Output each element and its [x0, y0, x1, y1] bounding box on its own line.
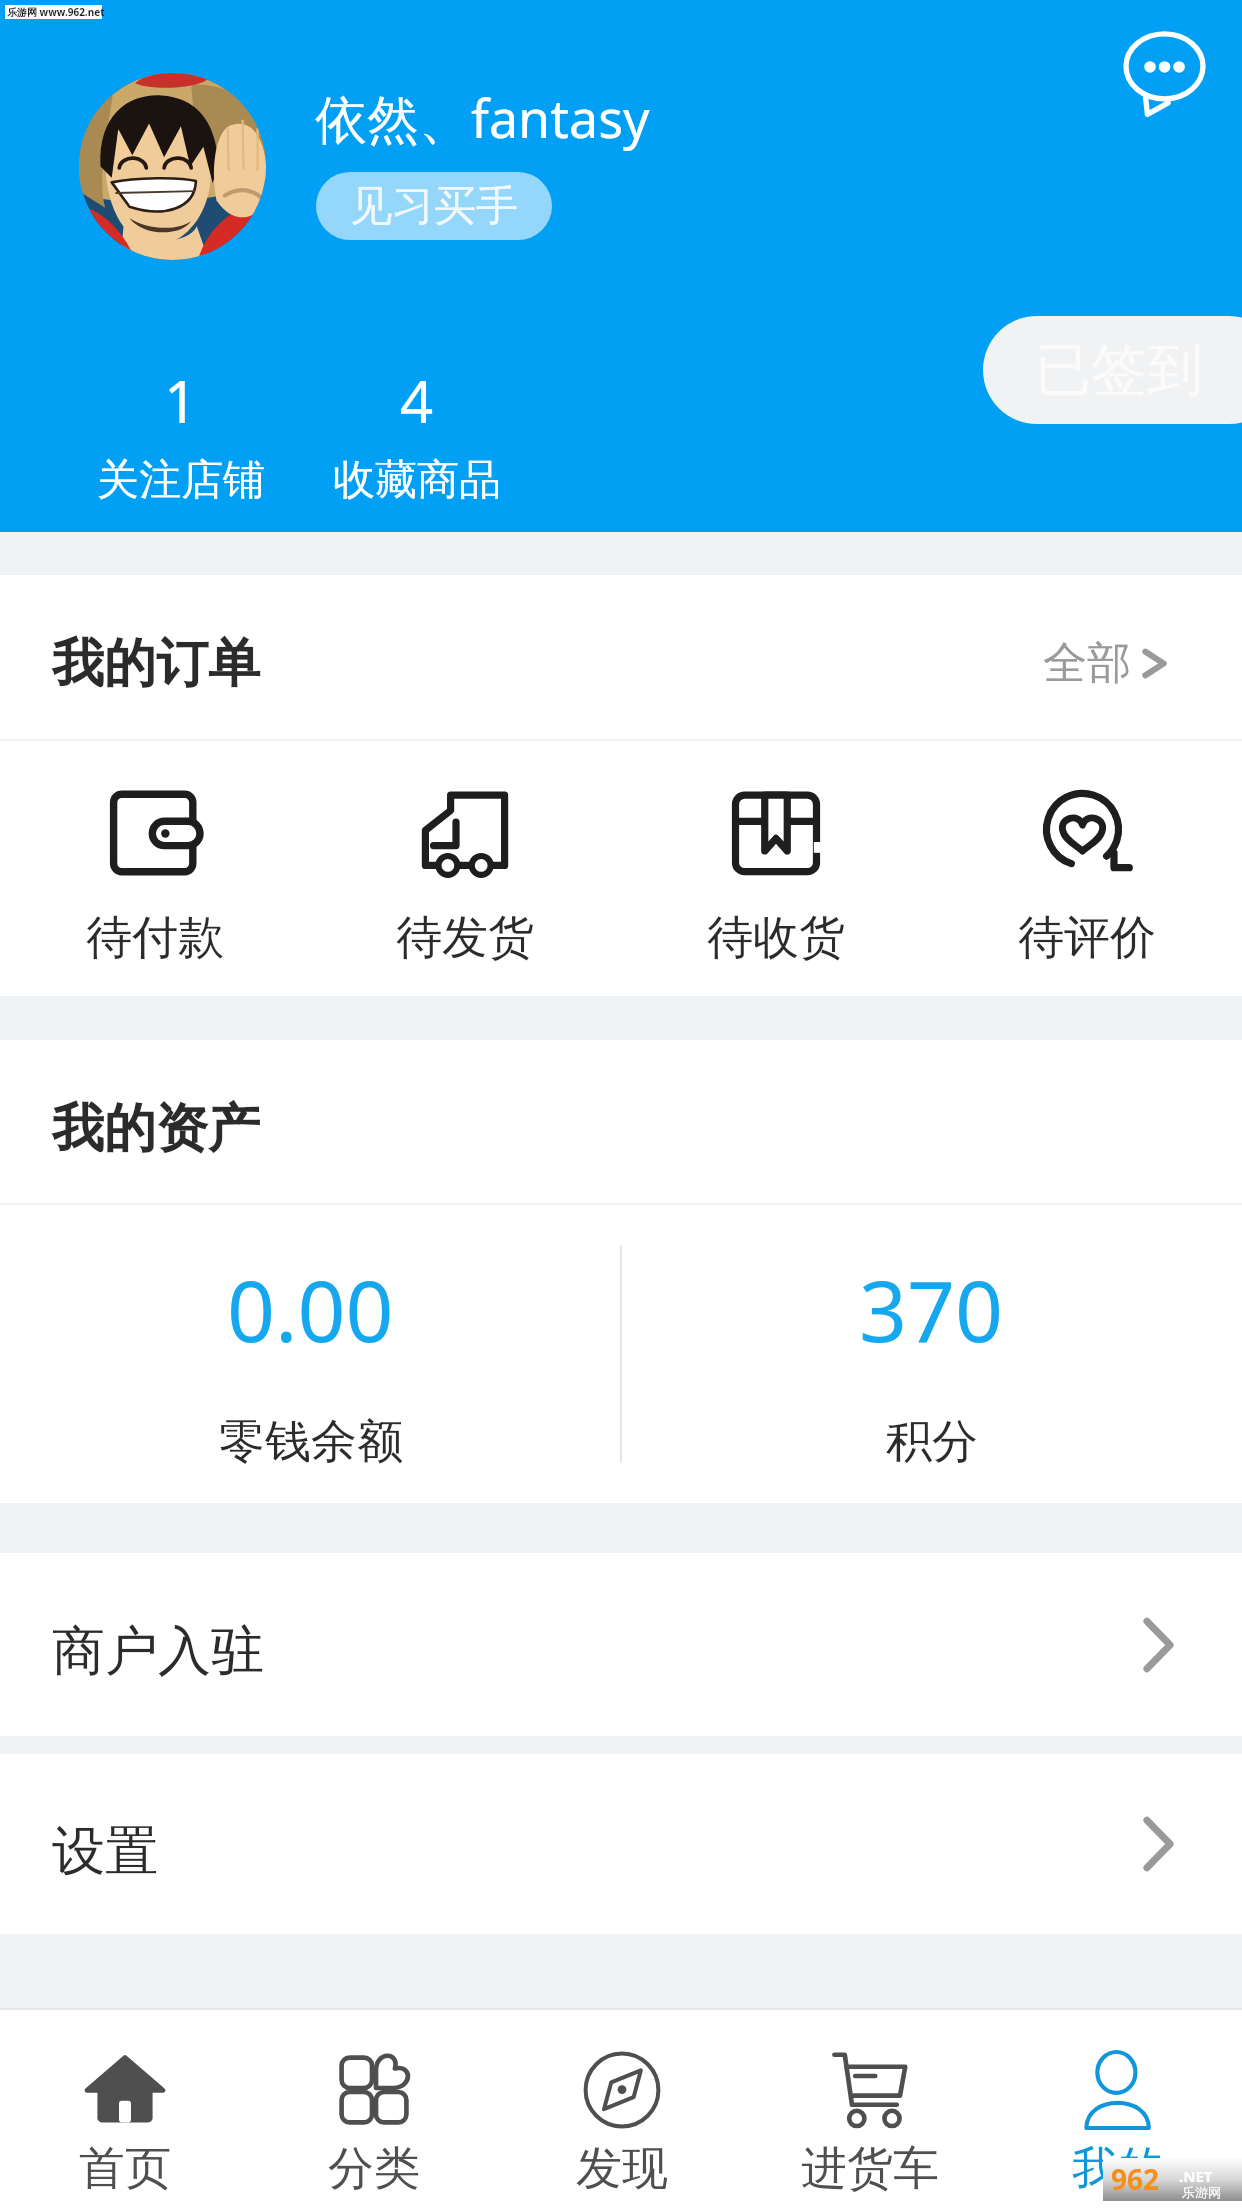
- staticText: 我的订单: [52, 631, 260, 697]
- button[interactable]: 待评价: [931, 741, 1242, 996]
- staticText: 我的: [1072, 2140, 1164, 2198]
- staticText: 积分: [886, 1413, 978, 1471]
- staticText: 370: [859, 1252, 1004, 1366]
- button[interactable]: 4: [299, 361, 535, 507]
- staticText: .NET: [1179, 2166, 1213, 2186]
- button[interactable]: 0.00: [0, 1205, 621, 1503]
- button[interactable]: 已签到: [983, 316, 1242, 424]
- staticText: 乐游网: [1182, 2184, 1221, 2200]
- button[interactable]: 我的: [994, 2010, 1242, 2208]
- button[interactable]: 待发货: [310, 741, 620, 996]
- staticText: 我的资产: [52, 1096, 260, 1162]
- button[interactable]: 设置: [0, 1754, 1242, 1934]
- staticText: 进货车: [801, 2140, 939, 2198]
- button[interactable]: 见习买手: [316, 172, 552, 240]
- button[interactable]: 进货车: [746, 2010, 994, 2208]
- staticText: 待付款: [86, 909, 224, 967]
- button[interactable]: Profile avatar: [79, 73, 266, 260]
- staticText: 首页: [79, 2140, 171, 2198]
- button[interactable]: 370: [621, 1205, 1242, 1503]
- staticText: 分类: [328, 2140, 420, 2198]
- staticText: 商户入驻: [52, 1618, 264, 1685]
- staticText: 关注店铺: [97, 454, 265, 507]
- staticText: 乐游网 www.962.net: [7, 5, 104, 19]
- staticText: 待发货: [396, 909, 534, 967]
- staticText: 0.00: [227, 1252, 394, 1366]
- button[interactable]: Messages: [1118, 32, 1210, 124]
- button[interactable]: 依然、fantasy: [315, 82, 650, 153]
- staticText: 1: [164, 361, 198, 440]
- button[interactable]: 待付款: [0, 741, 310, 996]
- staticText: 收藏商品: [333, 454, 501, 507]
- staticText: 962: [1111, 2160, 1160, 2198]
- staticText: 待评价: [1018, 909, 1156, 967]
- button[interactable]: 商户入驻: [0, 1553, 1242, 1736]
- button[interactable]: 我的订单: [0, 575, 1242, 739]
- button[interactable]: 待收货: [620, 741, 931, 996]
- staticText: 零钱余额: [219, 1413, 403, 1471]
- button[interactable]: 1: [63, 361, 299, 507]
- staticText: 设置: [52, 1818, 158, 1885]
- staticText: 全部: [1043, 636, 1131, 691]
- staticText: 发现: [576, 2140, 668, 2198]
- staticText: 见习买手: [350, 180, 518, 233]
- button[interactable]: 分类: [249, 2010, 498, 2208]
- staticText: 4: [400, 361, 434, 440]
- button[interactable]: 发现: [498, 2010, 746, 2208]
- staticText: 已签到: [1035, 335, 1203, 406]
- staticText: 待收货: [707, 909, 845, 967]
- button[interactable]: 首页: [0, 2010, 249, 2208]
